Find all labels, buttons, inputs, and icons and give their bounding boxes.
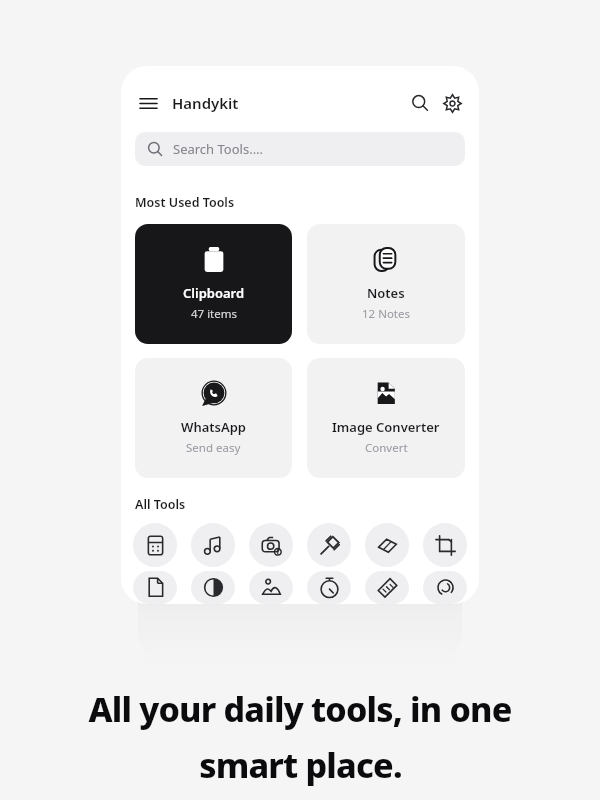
- button[interactable]: WhatsApp: [135, 358, 292, 478]
- button[interactable]: Search Tools....: [135, 132, 465, 166]
- staticText: 47 items: [191, 306, 238, 322]
- button[interactable]: Tool: [365, 523, 409, 567]
- staticText: Image Converter: [332, 418, 440, 436]
- staticText: All your daily tools, in one: [88, 686, 512, 732]
- staticText: Convert: [365, 440, 408, 456]
- staticText: Search Tools....: [173, 140, 264, 158]
- button[interactable]: Tool: [133, 571, 177, 604]
- staticText: Send easy: [186, 440, 241, 456]
- button[interactable]: Tool: [191, 571, 235, 604]
- button[interactable]: Tool: [423, 571, 467, 604]
- staticText: WhatsApp: [181, 418, 246, 436]
- button[interactable]: Tool: [307, 571, 351, 604]
- button[interactable]: Notes: [307, 224, 465, 344]
- button[interactable]: Tool: [365, 571, 409, 604]
- staticText: smart place.: [199, 742, 402, 788]
- staticText: Most Used Tools: [135, 194, 235, 211]
- staticText: Clipboard: [183, 284, 245, 302]
- staticText: 12 Notes: [362, 306, 410, 322]
- button[interactable]: Tool: [423, 523, 467, 567]
- button[interactable]: Tool: [191, 523, 235, 567]
- button[interactable]: Menu: [135, 90, 161, 116]
- button[interactable]: Image Converter: [307, 358, 465, 478]
- button[interactable]: Clipboard: [135, 224, 292, 344]
- button[interactable]: Search: [407, 90, 433, 116]
- staticText: Handykit: [172, 93, 239, 113]
- staticText: All Tools: [135, 496, 186, 513]
- button[interactable]: Tool: [249, 571, 293, 604]
- button[interactable]: Tool: [249, 523, 293, 567]
- staticText: Notes: [367, 284, 405, 302]
- button[interactable]: Settings: [439, 90, 465, 116]
- button[interactable]: Tool: [307, 523, 351, 567]
- button[interactable]: Tool: [133, 523, 177, 567]
